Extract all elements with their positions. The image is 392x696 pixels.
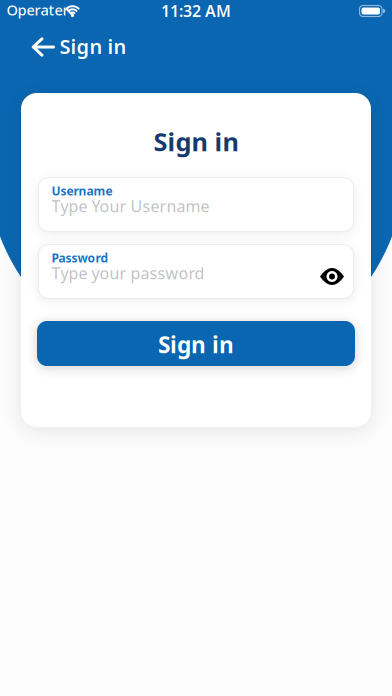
staticText: 11:32 AM [161,0,231,21]
button[interactable]: Sign in [37,321,355,366]
staticText: Sign in [153,125,238,158]
staticText: Type your password [51,262,204,284]
staticText: Type Your Username [51,195,209,217]
staticText: Sign in [158,329,234,359]
staticText: Username [51,183,112,199]
staticText: Sign in [59,33,126,60]
button[interactable]: Password [38,244,353,298]
button[interactable]: Back [23,30,63,64]
staticText: Password [51,250,108,266]
button[interactable]: Show password [314,262,350,291]
button[interactable]: Username [38,177,353,231]
staticText: Operater [6,0,68,19]
